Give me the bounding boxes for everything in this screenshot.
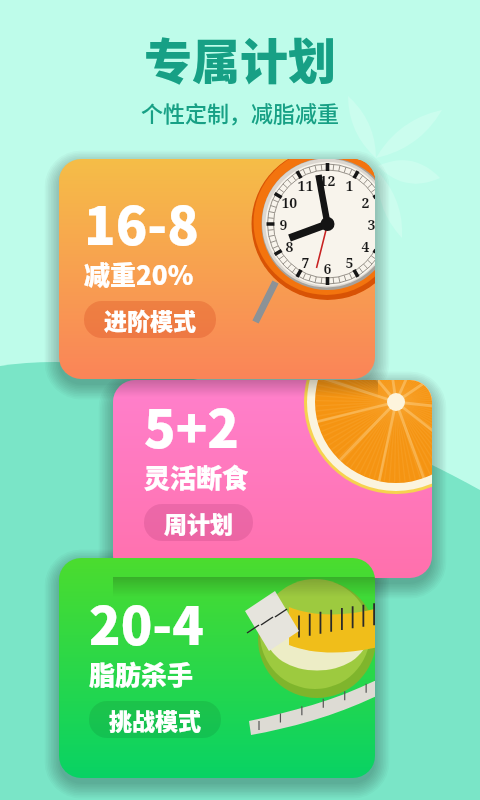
- staticText: 5+2: [144, 388, 240, 463]
- button[interactable]: 周计划: [144, 504, 253, 541]
- staticText: 脂肪杀手: [89, 655, 194, 693]
- staticText: 16-8: [84, 185, 199, 260]
- button[interactable]: 挑战模式: [89, 701, 221, 738]
- staticText: 周计划: [164, 506, 233, 539]
- staticText: 专属计划: [144, 23, 337, 93]
- button[interactable]: 20-4 脂肪杀手 挑战模式: [59, 558, 375, 778]
- staticText: 挑战模式: [109, 703, 201, 736]
- staticText: 进阶模式: [104, 303, 196, 336]
- staticText: 20-4: [89, 585, 204, 660]
- button[interactable]: 16-8 减重20% 进阶模式: [59, 159, 375, 379]
- button[interactable]: 进阶模式: [84, 301, 216, 338]
- staticText: 个性定制，减脂减重: [141, 96, 340, 128]
- button[interactable]: 5+2 灵活断食 周计划: [113, 380, 432, 578]
- staticText: 减重20%: [84, 255, 194, 293]
- staticText: 灵活断食: [144, 458, 249, 496]
